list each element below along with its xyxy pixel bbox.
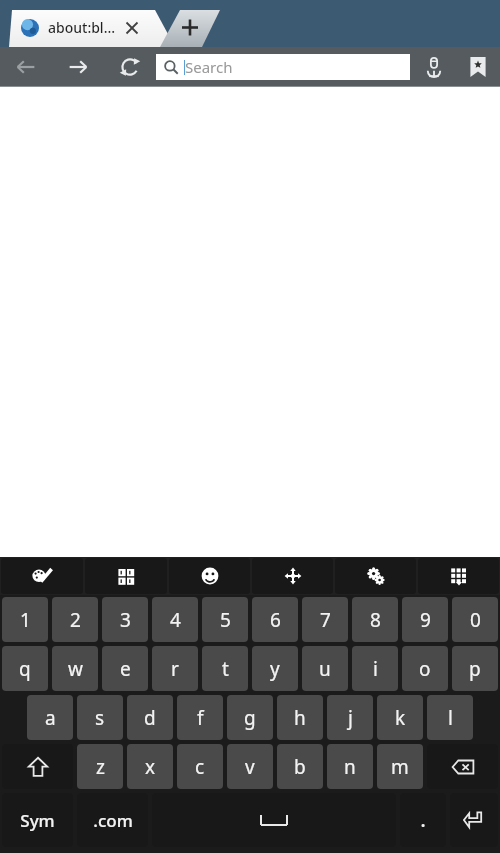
staticText: 0 xyxy=(470,607,481,633)
staticText: v xyxy=(245,754,255,780)
staticText: 2 xyxy=(70,607,81,633)
staticText: z xyxy=(96,754,105,780)
button[interactable]: about:bl… xyxy=(9,8,177,47)
staticText: Sym xyxy=(20,809,55,832)
button[interactable]: n xyxy=(327,744,373,789)
button[interactable]: Backspace xyxy=(427,744,498,789)
button[interactable]: .com xyxy=(77,793,148,847)
button[interactable]: Search xyxy=(157,54,409,80)
staticText: y xyxy=(270,656,280,682)
staticText: 1 xyxy=(20,607,31,633)
staticText: s xyxy=(95,705,105,731)
staticText: j xyxy=(348,705,353,731)
staticText: 3 xyxy=(120,607,131,633)
staticText: 6 xyxy=(270,607,281,633)
staticText: b xyxy=(294,754,306,780)
button[interactable]: 7 xyxy=(302,597,348,642)
button[interactable]: 8 xyxy=(352,597,398,642)
staticText: p xyxy=(469,656,481,682)
button[interactable]: p xyxy=(452,646,498,691)
staticText: g xyxy=(244,705,256,731)
staticText: m xyxy=(391,754,409,780)
button[interactable]: r xyxy=(152,646,198,691)
button[interactable]: Close tab xyxy=(121,17,143,39)
button[interactable]: Enter xyxy=(450,793,498,847)
staticText: r xyxy=(171,656,179,682)
staticText: h xyxy=(294,705,306,731)
button[interactable]: . xyxy=(400,793,446,847)
button[interactable]: Hide keyboard xyxy=(418,558,499,594)
button[interactable]: 1 xyxy=(2,597,48,642)
button[interactable]: t xyxy=(202,646,248,691)
button[interactable]: Emoji xyxy=(169,558,250,594)
staticText: e xyxy=(120,656,131,682)
button[interactable]: b xyxy=(277,744,323,789)
button[interactable]: m xyxy=(377,744,423,789)
staticText: f xyxy=(197,705,204,731)
staticText: about:bl… xyxy=(48,18,115,37)
staticText: i xyxy=(373,656,378,682)
button[interactable]: o xyxy=(402,646,448,691)
button[interactable]: g xyxy=(227,695,273,740)
staticText: q xyxy=(19,656,31,682)
staticText: 7 xyxy=(320,607,331,633)
staticText: w xyxy=(68,656,83,682)
button[interactable]: 4 xyxy=(152,597,198,642)
staticText: t xyxy=(222,656,229,682)
button[interactable]: Move cursor xyxy=(252,558,333,594)
button[interactable]: e xyxy=(102,646,148,691)
button[interactable]: a xyxy=(27,695,73,740)
button[interactable]: Reload xyxy=(104,47,156,86)
button[interactable]: Settings xyxy=(335,558,416,594)
button[interactable]: Sym xyxy=(2,793,73,847)
button[interactable]: k xyxy=(377,695,423,740)
staticText: Search xyxy=(185,57,233,77)
button[interactable]: h xyxy=(277,695,323,740)
staticText: u xyxy=(319,656,331,682)
button[interactable]: 2 xyxy=(52,597,98,642)
button[interactable]: 6 xyxy=(252,597,298,642)
button[interactable]: 3 xyxy=(102,597,148,642)
button[interactable]: f xyxy=(177,695,223,740)
button[interactable]: c xyxy=(177,744,223,789)
button[interactable]: l xyxy=(427,695,473,740)
staticText: .com xyxy=(93,809,133,832)
staticText: . xyxy=(420,807,426,833)
button[interactable]: j xyxy=(327,695,373,740)
button[interactable]: 0 xyxy=(452,597,498,642)
button[interactable]: New tab xyxy=(160,8,226,47)
button[interactable]: v xyxy=(227,744,273,789)
staticText: d xyxy=(144,705,156,731)
button[interactable]: u xyxy=(302,646,348,691)
button[interactable]: Numbers xyxy=(85,558,167,594)
button[interactable]: 5 xyxy=(202,597,248,642)
staticText: n xyxy=(344,754,356,780)
button[interactable]: 9 xyxy=(402,597,448,642)
staticText: 5 xyxy=(220,607,231,633)
staticText: k xyxy=(395,705,406,731)
staticText: 8 xyxy=(370,607,381,633)
button[interactable]: s xyxy=(77,695,123,740)
staticText: x xyxy=(145,754,156,780)
staticText: c xyxy=(195,754,205,780)
staticText: 9 xyxy=(420,607,431,633)
button[interactable]: Forward xyxy=(52,47,104,86)
button[interactable]: Space xyxy=(152,793,396,847)
staticText: l xyxy=(448,705,453,731)
button[interactable]: Shift xyxy=(2,744,73,789)
button[interactable]: i xyxy=(352,646,398,691)
button[interactable]: Voice search xyxy=(412,47,456,86)
button[interactable]: x xyxy=(127,744,173,789)
button[interactable]: w xyxy=(52,646,98,691)
button[interactable]: z xyxy=(77,744,123,789)
button[interactable]: d xyxy=(127,695,173,740)
button[interactable]: y xyxy=(252,646,298,691)
staticText: 4 xyxy=(170,607,181,633)
button[interactable]: Back xyxy=(0,47,52,86)
button[interactable]: Bookmarks xyxy=(456,47,500,86)
staticText: a xyxy=(45,705,56,731)
button[interactable]: Theme xyxy=(1,558,83,594)
staticText: o xyxy=(419,656,431,682)
button[interactable]: q xyxy=(2,646,48,691)
